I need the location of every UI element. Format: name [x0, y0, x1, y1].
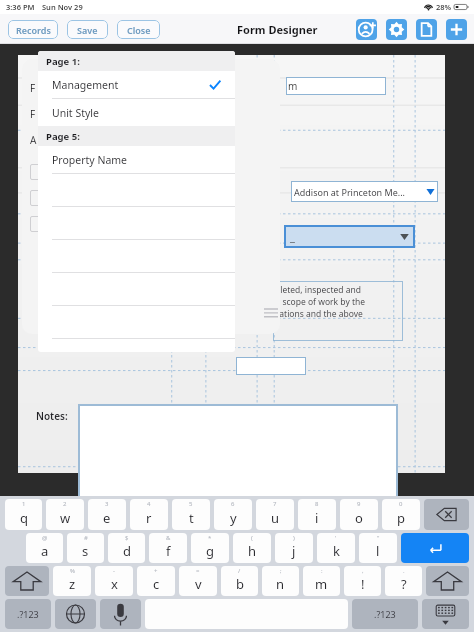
button[interactable]: .?123	[5, 599, 51, 629]
staticText: Form Designer	[237, 22, 318, 37]
staticText: =	[196, 567, 200, 575]
staticText: !	[361, 575, 365, 593]
button[interactable]: Shift	[5, 566, 49, 596]
button[interactable]: %	[53, 566, 91, 596]
button[interactable]	[236, 357, 306, 375]
button[interactable]: Save	[67, 20, 108, 39]
staticText: q	[20, 509, 28, 527]
staticText: Page 1:	[46, 55, 80, 68]
button[interactable]: &	[149, 533, 187, 563]
staticText: Property Name	[52, 153, 128, 167]
button[interactable]: +	[137, 566, 175, 596]
button[interactable]: 6	[214, 499, 252, 530]
staticText: #	[84, 534, 88, 542]
button[interactable]: 0	[382, 499, 420, 530]
staticText: b	[236, 575, 244, 593]
staticText: o	[355, 509, 363, 527]
staticText: 6	[231, 500, 235, 508]
button[interactable]: -	[95, 566, 133, 596]
button[interactable]: Records	[8, 20, 58, 39]
button[interactable]: Settings	[386, 19, 407, 40]
staticText: s	[82, 542, 89, 560]
staticText: Close	[127, 24, 151, 36]
button[interactable]: Close	[117, 20, 160, 39]
button[interactable]: 9	[340, 499, 378, 530]
button[interactable]: 8	[298, 499, 336, 530]
button[interactable]: 1	[5, 499, 42, 530]
button[interactable]: )	[275, 533, 313, 563]
staticText: *	[208, 534, 212, 542]
button[interactable]: m	[286, 77, 386, 95]
button[interactable]: Property Name	[38, 146, 235, 173]
staticText: .	[403, 567, 405, 575]
staticText: a	[41, 542, 49, 560]
button[interactable]	[78, 404, 398, 508]
button[interactable]: 7	[256, 499, 294, 530]
button[interactable]: Addison at Princeton Me...	[291, 181, 438, 202]
staticText: A	[30, 133, 37, 147]
button[interactable]: 2	[46, 499, 84, 530]
button[interactable]: :	[303, 566, 340, 596]
button[interactable]: *	[191, 533, 229, 563]
button[interactable]: "	[359, 533, 397, 563]
button[interactable]: Shift	[426, 566, 469, 596]
staticText: k	[333, 542, 340, 560]
staticText: f	[166, 542, 171, 560]
button[interactable]: 5	[172, 499, 210, 530]
button[interactable]: =	[179, 566, 217, 596]
button[interactable]: ,	[344, 566, 381, 596]
staticText: m	[315, 575, 328, 593]
staticText: (	[251, 534, 253, 542]
staticText: &	[166, 534, 171, 542]
staticText: )	[293, 534, 295, 542]
staticText: d	[123, 542, 131, 560]
button[interactable]: Backspace	[424, 499, 469, 530]
staticText: 8	[315, 500, 319, 508]
staticText: h	[248, 542, 257, 560]
staticText: 4	[147, 500, 151, 508]
button[interactable]: Hide keyboard	[422, 599, 469, 629]
staticText: -	[113, 567, 115, 575]
staticText: :	[321, 567, 323, 575]
staticText: Management	[52, 78, 119, 92]
button[interactable]: Add person	[356, 19, 377, 40]
staticText: "	[377, 534, 380, 542]
button[interactable]: pleted, inspected and	[273, 281, 403, 341]
staticText: .?123	[374, 608, 396, 620]
staticText: c	[153, 575, 160, 593]
staticText: ,	[362, 567, 364, 575]
button[interactable]: (	[233, 533, 271, 563]
button[interactable]: Document	[416, 19, 437, 40]
button[interactable]: $	[108, 533, 145, 563]
staticText: 1	[22, 500, 26, 508]
button[interactable]: Return	[401, 533, 469, 563]
button[interactable]: .?123	[352, 599, 418, 629]
staticText: g	[206, 542, 214, 560]
staticText: 28%	[436, 2, 452, 12]
staticText: @	[42, 534, 48, 542]
button[interactable]: '	[317, 533, 355, 563]
staticText: m	[288, 79, 298, 93]
staticText: t	[189, 509, 194, 527]
button[interactable]: _	[284, 225, 415, 248]
button[interactable]: Add	[446, 19, 467, 40]
staticText: z	[69, 575, 76, 593]
staticText: F	[30, 107, 36, 121]
button[interactable]: 3	[88, 499, 126, 530]
button[interactable]: 4	[130, 499, 168, 530]
button[interactable]: Emoji / language	[55, 599, 96, 629]
staticText: ;	[280, 567, 282, 575]
staticText: u	[271, 509, 280, 527]
button[interactable]: #	[67, 533, 104, 563]
button[interactable]: @	[26, 533, 63, 563]
button[interactable]: .	[385, 566, 422, 596]
button[interactable]: ;	[262, 566, 299, 596]
button[interactable]: Dictation	[100, 599, 141, 629]
staticText: 2	[63, 500, 67, 508]
staticText: ?	[401, 575, 407, 593]
staticText: 5	[189, 500, 193, 508]
button[interactable]: Unit Style	[38, 99, 235, 126]
button[interactable]: Management	[38, 71, 235, 98]
button[interactable]: /	[221, 566, 258, 596]
